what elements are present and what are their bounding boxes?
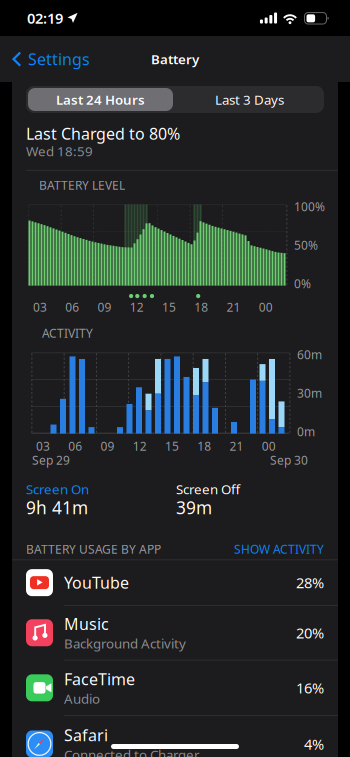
staticText: 60m — [297, 347, 322, 362]
staticText: 9h 41m — [26, 496, 88, 519]
staticText: Music — [64, 613, 109, 634]
staticText: 0% — [294, 276, 311, 291]
staticText: 15 — [162, 299, 176, 315]
staticText: 39m — [176, 496, 212, 519]
staticText: 09 — [100, 438, 114, 454]
staticText: 4% — [304, 734, 324, 754]
staticText: 12 — [130, 299, 144, 315]
button[interactable]: Safari — [12, 716, 338, 757]
staticText: ACTIVITY — [42, 325, 93, 341]
staticText: Last 24 Hours — [56, 91, 145, 108]
staticText: Background Activity — [64, 634, 186, 652]
staticText: 06 — [68, 438, 82, 454]
staticText: Audio — [64, 690, 100, 707]
button[interactable]: Last 3 Days — [175, 86, 324, 113]
staticText: Last Charged to 80% — [26, 123, 180, 144]
button[interactable]: FaceTime — [12, 660, 338, 715]
staticText: 06 — [65, 299, 79, 315]
staticText: BATTERY USAGE BY APP — [26, 541, 161, 557]
staticText: 09 — [97, 299, 111, 315]
staticText: Sep 30 — [270, 452, 308, 468]
staticText: 03 — [33, 299, 47, 315]
staticText: 18 — [194, 299, 208, 315]
staticText: Battery — [151, 50, 199, 68]
staticText: Settings — [28, 48, 90, 70]
button[interactable]: Settings — [0, 39, 98, 79]
staticText: 20% — [296, 623, 324, 642]
staticText: 100% — [294, 199, 325, 214]
staticText: 50% — [294, 237, 318, 253]
staticText: Last 3 Days — [215, 91, 284, 108]
staticText: Sep 29 — [32, 452, 70, 468]
button[interactable]: SHOW ACTIVITY — [234, 541, 324, 557]
staticText: 30m — [297, 385, 322, 401]
staticText: 12 — [133, 438, 147, 454]
button[interactable]: YouTube — [12, 560, 338, 605]
staticText: 02:19 — [27, 8, 63, 28]
staticText: 0m — [297, 424, 315, 439]
staticText: Wed 18:59 — [26, 142, 93, 160]
staticText: 00 — [262, 438, 276, 454]
staticText: 03 — [36, 438, 50, 454]
staticText: Connected to Charger — [64, 746, 200, 757]
staticText: FaceTime — [64, 668, 135, 690]
staticText: 15 — [165, 438, 179, 454]
staticText: SHOW ACTIVITY — [234, 541, 324, 557]
button[interactable]: Music — [12, 606, 338, 660]
staticText: Screen On — [26, 480, 89, 498]
staticText: 28% — [296, 573, 324, 592]
staticText: 16% — [296, 678, 324, 698]
button[interactable]: Last 24 Hours — [26, 86, 175, 113]
staticText: 00 — [259, 299, 273, 315]
staticText: 18 — [197, 438, 211, 454]
staticText: YouTube — [64, 572, 129, 593]
staticText: Screen Off — [176, 480, 240, 498]
staticText: Safari — [64, 724, 108, 746]
staticText: 21 — [226, 299, 240, 315]
staticText: BATTERY LEVEL — [39, 177, 125, 193]
staticText: 21 — [229, 438, 243, 454]
